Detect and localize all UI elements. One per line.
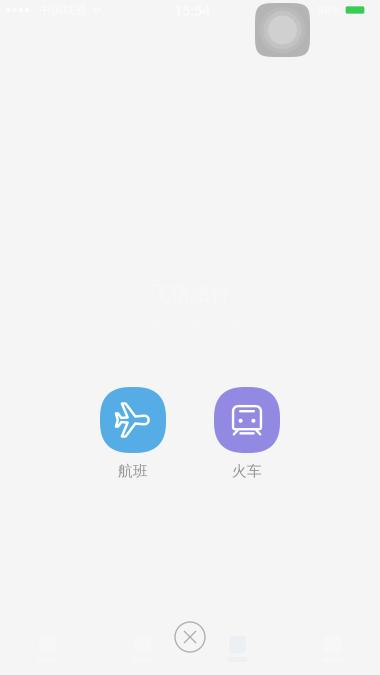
- button[interactable]: Close: [167, 614, 213, 660]
- staticText: 火车: [232, 462, 262, 480]
- staticText: 航班: [118, 462, 148, 480]
- button[interactable]: 航班: [100, 387, 166, 480]
- button[interactable]: 火车: [214, 387, 280, 480]
- button[interactable]: AssistiveTouch: [255, 3, 310, 57]
